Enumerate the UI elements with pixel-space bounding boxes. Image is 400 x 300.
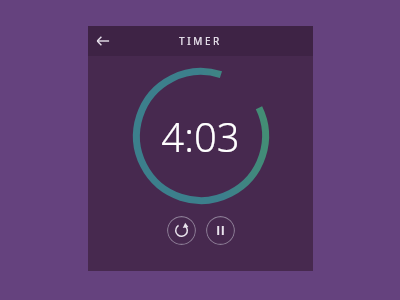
- staticText: 4:03: [161, 109, 240, 163]
- staticText: TIMER: [179, 34, 222, 48]
- button[interactable]: Back: [88, 26, 118, 56]
- button[interactable]: Reset: [167, 216, 196, 245]
- button[interactable]: Pause: [206, 216, 235, 245]
